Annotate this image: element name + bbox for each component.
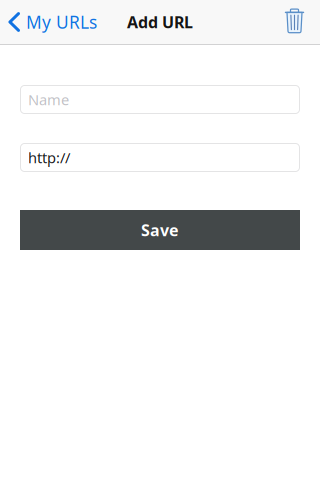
staticText: Save	[141, 219, 179, 241]
staticText: My URLs	[26, 10, 97, 33]
button[interactable]: http://	[20, 143, 300, 172]
button[interactable]: Name	[20, 85, 300, 114]
button[interactable]: Save	[20, 210, 300, 250]
button[interactable]: My URLs	[0, 0, 103, 44]
staticText: Add URL	[127, 11, 193, 33]
staticText: Name	[28, 90, 69, 109]
button[interactable]: Delete	[285, 0, 320, 44]
staticText: http://	[28, 148, 70, 167]
